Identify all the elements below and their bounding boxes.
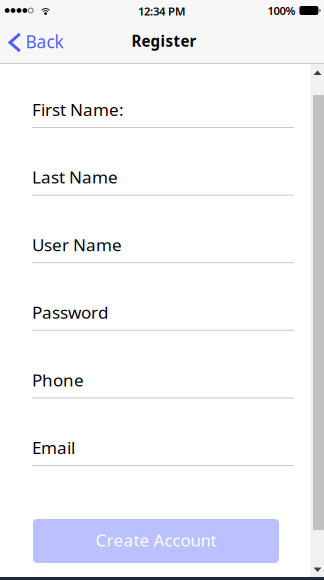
staticText: 12:34 PM xyxy=(138,3,186,19)
button[interactable]: Phone xyxy=(32,353,294,398)
staticText: Email xyxy=(32,436,75,459)
button[interactable]: First Name: xyxy=(32,83,294,128)
staticText: User Name xyxy=(32,233,122,256)
staticText: Back xyxy=(25,30,63,53)
button[interactable]: Password xyxy=(32,286,294,331)
staticText: Last Name xyxy=(32,165,118,189)
staticText: Register xyxy=(131,31,196,51)
button[interactable]: User Name xyxy=(32,218,294,263)
staticText: Password xyxy=(32,301,108,324)
staticText: 100% xyxy=(267,3,295,18)
staticText: Create Account xyxy=(95,528,216,552)
staticText: Phone xyxy=(32,368,84,391)
button[interactable]: Last Name xyxy=(32,151,294,196)
button[interactable]: Create Account xyxy=(33,519,279,563)
button[interactable]: Email xyxy=(32,421,294,466)
staticText: First Name: xyxy=(32,98,124,121)
button[interactable]: Back xyxy=(0,22,73,63)
